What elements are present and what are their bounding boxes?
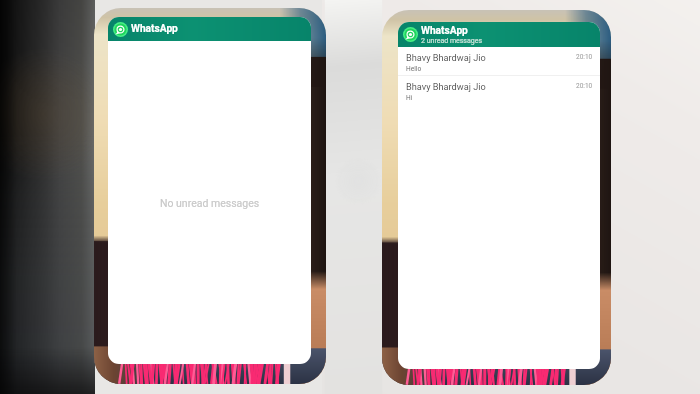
button[interactable]: Bhavy Bhardwaj Jio bbox=[398, 47, 600, 75]
staticText: WhatsApp bbox=[131, 23, 178, 35]
button[interactable]: WhatsApp bbox=[398, 22, 600, 47]
staticText: Bhavy Bhardwaj Jio bbox=[406, 52, 486, 63]
staticText: Bhavy Bhardwaj Jio bbox=[406, 81, 486, 92]
staticText: 2 unread messages bbox=[421, 37, 483, 45]
staticText: 20:10 bbox=[576, 53, 593, 61]
other: WhatsApp bbox=[403, 27, 418, 42]
staticText: Hi bbox=[406, 94, 413, 102]
button[interactable]: Bhavy Bhardwaj Jio bbox=[398, 76, 600, 104]
staticText: WhatsApp bbox=[421, 25, 468, 37]
staticText: Hello bbox=[406, 65, 422, 73]
button[interactable]: WhatsApp bbox=[108, 17, 311, 41]
staticText: 20:10 bbox=[576, 82, 593, 90]
other: WhatsApp bbox=[113, 22, 128, 37]
staticText: No unread messages bbox=[160, 197, 260, 209]
